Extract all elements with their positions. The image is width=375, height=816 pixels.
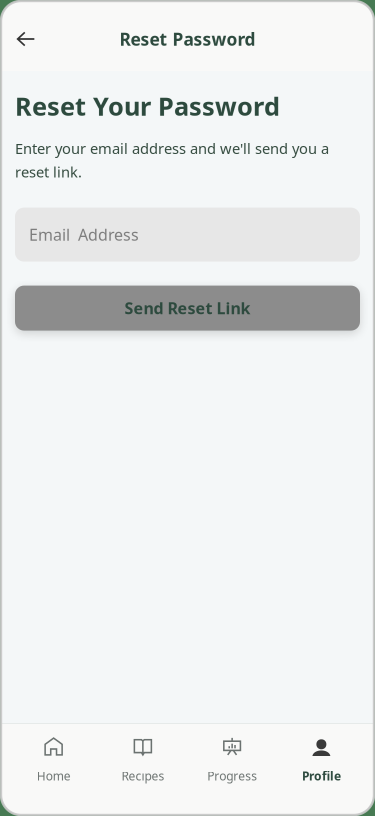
button[interactable]: Back bbox=[4, 17, 48, 61]
button[interactable]: Send Reset Link bbox=[15, 286, 360, 331]
staticText: Enter your email address and we'll send … bbox=[15, 139, 329, 182]
button[interactable]: Profile bbox=[277, 737, 366, 784]
staticText: Reset Password bbox=[119, 27, 255, 50]
staticText: Reset Your Password bbox=[15, 89, 280, 123]
button[interactable]: Progress bbox=[187, 737, 277, 784]
staticText: Send Reset Link bbox=[124, 297, 250, 319]
button[interactable]: Recipes bbox=[98, 737, 187, 784]
staticText: Home bbox=[37, 768, 71, 784]
staticText: Progress bbox=[207, 768, 257, 784]
button[interactable]: Home bbox=[9, 737, 98, 784]
staticText: Email Address bbox=[29, 224, 139, 245]
staticText: Profile bbox=[302, 768, 341, 784]
staticText: Recipes bbox=[121, 768, 164, 784]
